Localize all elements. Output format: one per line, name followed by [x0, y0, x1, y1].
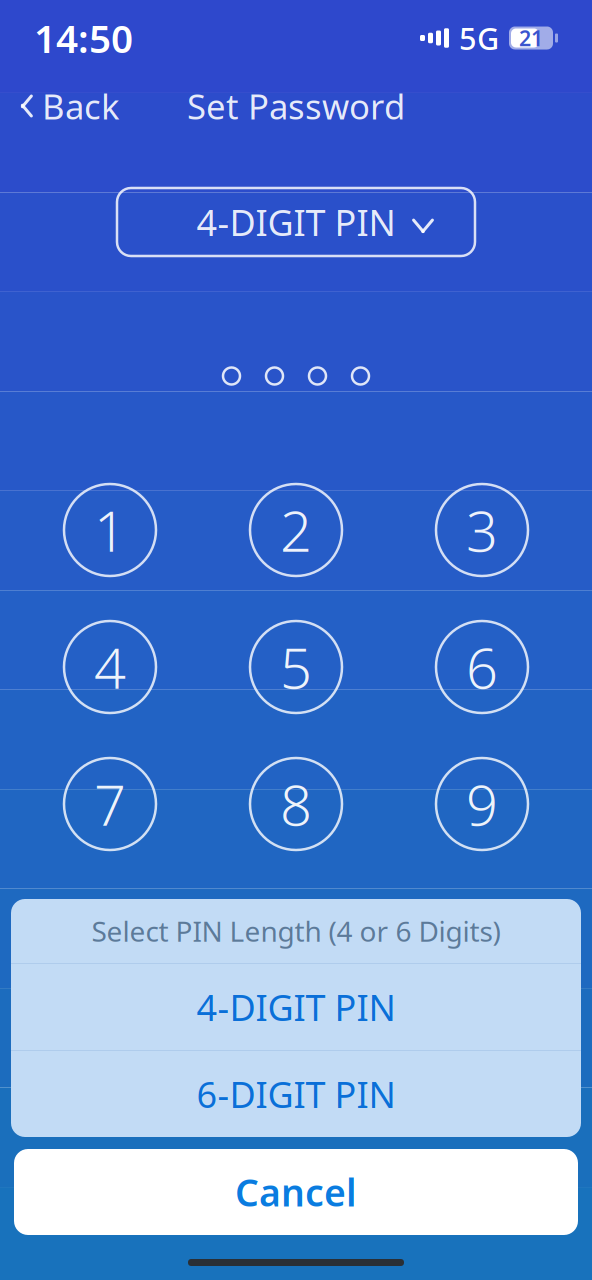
button[interactable]: 6-DIGIT PIN [11, 1051, 581, 1137]
staticText: 8 [280, 767, 312, 841]
staticText: Select PIN Length (4 or 6 Digits) [91, 912, 500, 950]
staticText: 3 [466, 493, 498, 567]
staticText: 14:50 [34, 12, 133, 64]
button[interactable]: 4-DIGIT PIN [117, 188, 475, 256]
button[interactable]: 7 [64, 758, 156, 850]
button[interactable]: 1 [64, 484, 156, 576]
staticText: 4-DIGIT PIN [196, 983, 395, 1031]
button[interactable]: 5 [250, 621, 342, 713]
button[interactable]: 4-DIGIT PIN [11, 964, 581, 1050]
staticText: 6 [466, 630, 498, 704]
button[interactable]: 8 [250, 758, 342, 850]
button[interactable]: Back [0, 76, 134, 136]
staticText: 7 [94, 767, 126, 841]
staticText: 1 [94, 493, 126, 567]
staticText: Cancel [235, 1167, 357, 1217]
button[interactable]: Cancel [14, 1149, 578, 1235]
staticText: 5G [459, 18, 499, 58]
button[interactable]: 9 [436, 758, 528, 850]
button[interactable]: 4 [64, 621, 156, 713]
staticText: 4 [94, 630, 126, 704]
staticText: 6-DIGIT PIN [196, 1070, 395, 1118]
button[interactable]: 6 [436, 621, 528, 713]
button[interactable]: 3 [436, 484, 528, 576]
staticText: 4-DIGIT PIN [196, 198, 395, 246]
staticText: 5 [280, 630, 312, 704]
button[interactable]: 2 [250, 484, 342, 576]
staticText: Set Password [187, 83, 405, 129]
staticText: Back [42, 83, 120, 129]
staticText: 2 [280, 493, 312, 567]
staticText: 21 [519, 24, 543, 52]
staticText: 9 [466, 767, 498, 841]
